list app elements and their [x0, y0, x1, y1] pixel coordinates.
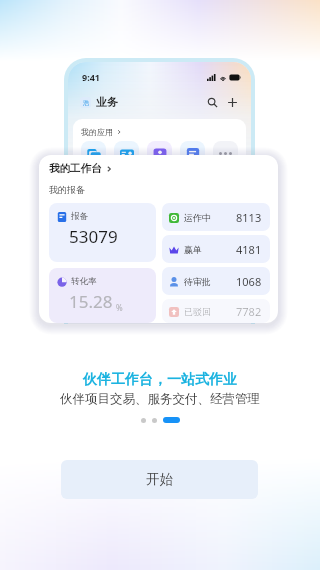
- staticText: 7782: [236, 304, 262, 319]
- button[interactable]: App 4: [180, 141, 205, 166]
- button[interactable]: App 1: [81, 141, 106, 166]
- button[interactable]: 赢单: [162, 235, 270, 263]
- button[interactable]: 运作中: [162, 203, 270, 231]
- staticText: 4181: [236, 242, 262, 257]
- button[interactable]: Add: [226, 96, 239, 109]
- staticText: 运作中: [184, 212, 211, 223]
- button[interactable]: More apps: [213, 141, 238, 166]
- staticText: 53079: [69, 225, 118, 248]
- button[interactable]: 待审批: [162, 267, 270, 295]
- staticText: 浩: [83, 99, 89, 107]
- staticText: 15.28: [69, 290, 113, 313]
- button[interactable]: 我的应用: [81, 127, 122, 137]
- button[interactable]: App 2: [114, 141, 139, 166]
- button[interactable]: 转化率: [49, 268, 156, 323]
- staticText: 8113: [236, 210, 262, 225]
- staticText: 伙伴工作台，一站式作业: [83, 371, 237, 389]
- staticText: 报备: [71, 211, 88, 222]
- staticText: %: [116, 302, 123, 313]
- staticText: 赢单: [184, 244, 202, 255]
- staticText: 开始: [146, 471, 173, 488]
- staticText: 待审批: [184, 276, 211, 287]
- button[interactable]: 报备: [49, 203, 156, 262]
- staticText: 我的报备: [49, 184, 85, 195]
- staticText: 1068: [236, 274, 262, 289]
- button[interactable]: 开始: [61, 460, 258, 499]
- staticText: 我的工作台: [49, 162, 102, 175]
- button[interactable]: 已驳回: [162, 299, 270, 323]
- staticText: 已驳回: [184, 306, 211, 317]
- staticText: 伙伴项目交易、服务交付、经营管理: [60, 391, 260, 407]
- staticText: 我的应用: [81, 127, 113, 137]
- staticText: 业务: [96, 95, 118, 109]
- staticText: 转化率: [71, 276, 97, 287]
- staticText: 9:41: [82, 71, 100, 83]
- button[interactable]: 我的工作台: [49, 162, 113, 175]
- button[interactable]: Search: [206, 96, 219, 109]
- button[interactable]: App 3: [147, 141, 172, 166]
